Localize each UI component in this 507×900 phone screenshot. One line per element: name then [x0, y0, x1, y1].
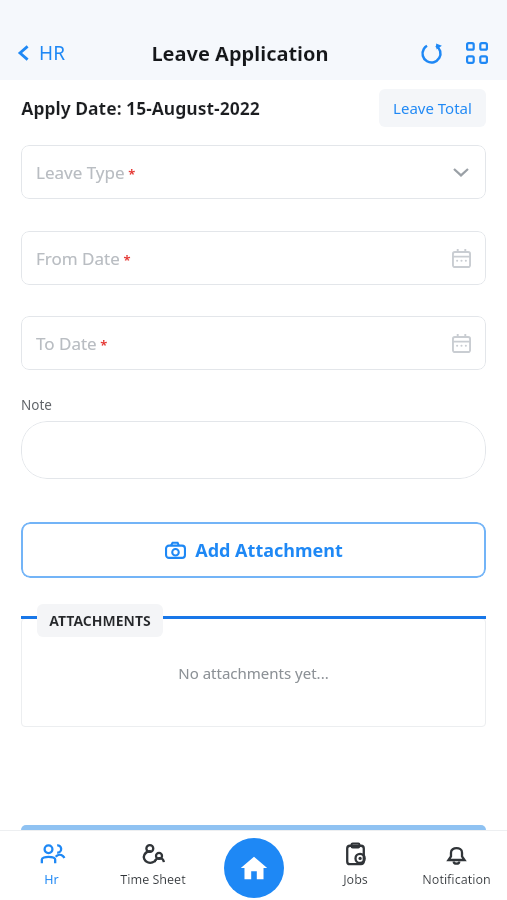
button[interactable]: Jobs — [305, 830, 406, 900]
button[interactable]: Hr — [0, 830, 102, 900]
button[interactable]: Add Attachment — [21, 522, 486, 578]
staticText: No attachments yet... — [178, 663, 329, 683]
staticText: Time Sheet — [120, 871, 186, 888]
staticText: Jobs — [343, 871, 368, 888]
button[interactable]: To Date * — [21, 316, 486, 370]
button[interactable] — [21, 825, 486, 830]
button[interactable] — [21, 421, 486, 479]
staticText: Add Attachment — [195, 538, 343, 563]
staticText: Notification — [422, 871, 491, 888]
staticText: Hr — [44, 871, 59, 888]
staticText: Note — [21, 396, 52, 414]
button[interactable]: HR — [10, 34, 69, 72]
staticText: Apply Date: 15-August-2022 — [21, 96, 260, 120]
button[interactable]: Refresh — [411, 33, 451, 73]
staticText: From Date * — [36, 247, 131, 270]
button[interactable]: Time Sheet — [102, 830, 204, 900]
button[interactable]: Grid menu — [457, 33, 497, 73]
staticText: ATTACHMENTS — [49, 611, 151, 630]
button[interactable]: Leave Type * — [21, 145, 486, 199]
button[interactable]: Leave Total — [379, 89, 486, 127]
staticText: HR — [39, 40, 65, 66]
button[interactable]: From Date * — [21, 231, 486, 285]
button[interactable]: Home — [224, 838, 284, 898]
staticText: Leave Application — [151, 40, 329, 67]
staticText: Leave Type * — [36, 161, 136, 184]
button[interactable]: Notification — [406, 830, 507, 900]
staticText: To Date * — [36, 332, 108, 355]
staticText: Leave Total — [393, 98, 472, 118]
